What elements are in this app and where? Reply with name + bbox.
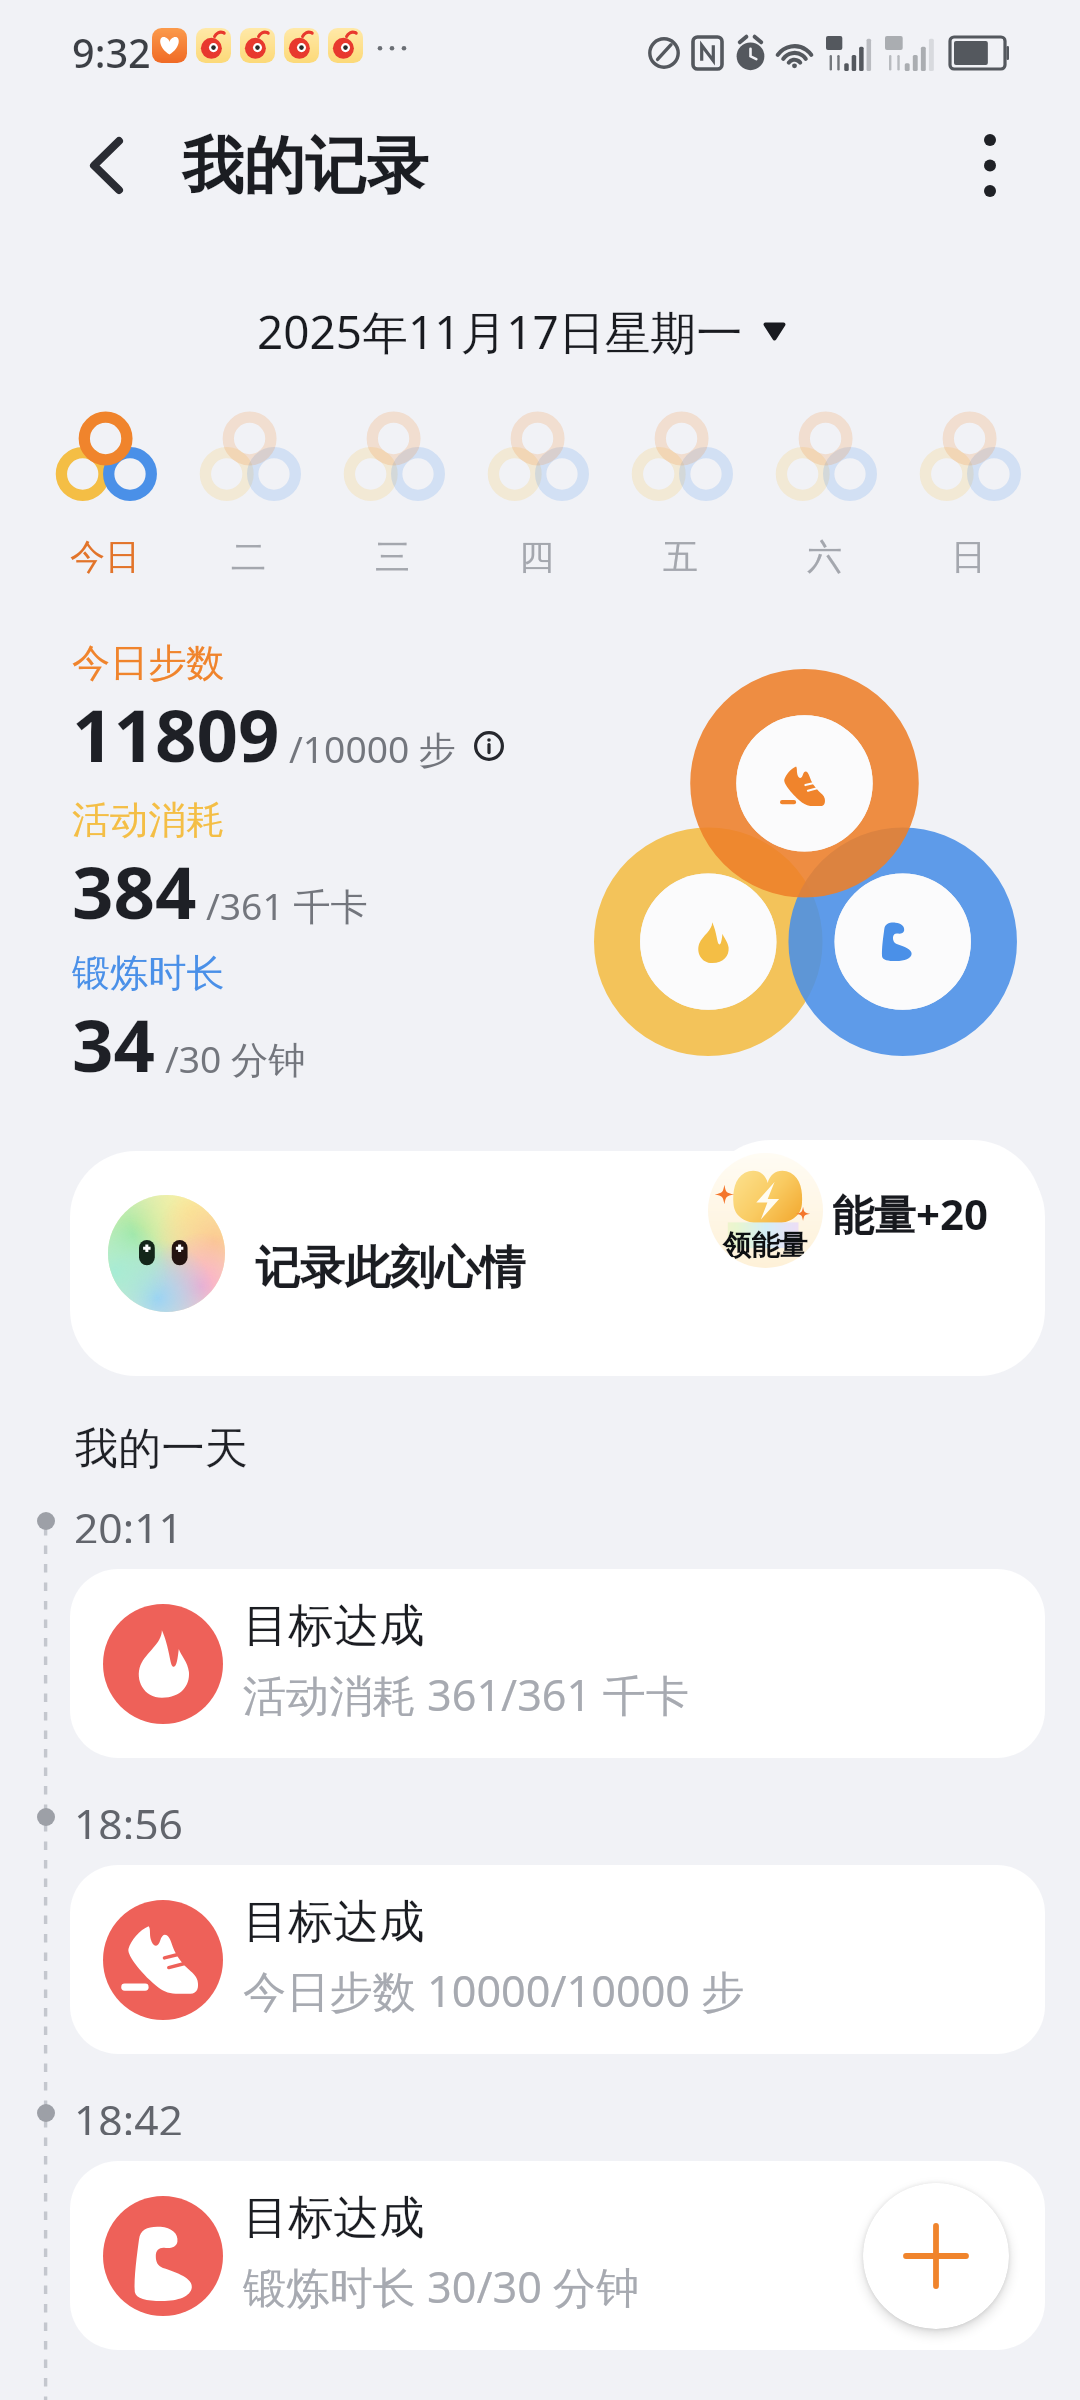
staticText: 五 <box>663 535 699 579</box>
button[interactable]: 三 <box>321 411 465 579</box>
button[interactable]: 六 <box>753 411 897 579</box>
button[interactable]: 四 <box>465 411 609 579</box>
staticText: 384 <box>72 841 197 940</box>
button[interactable]: More options <box>942 117 1038 213</box>
staticText: /361 千卡 <box>206 880 368 931</box>
button[interactable]: 二 <box>177 411 321 579</box>
staticText: 日 <box>951 535 987 579</box>
staticText: 目标达成 <box>243 2189 425 2246</box>
staticText: /10000 步 <box>289 723 457 774</box>
button[interactable]: Add record <box>863 2183 1009 2329</box>
button[interactable]: 今日 <box>33 411 177 579</box>
button[interactable]: 领能量 <box>701 1140 1042 1281</box>
staticText: 记录此刻心情 <box>255 1240 525 1297</box>
staticText: 目标达成 <box>243 1893 425 1950</box>
staticText: 今日 <box>70 535 141 579</box>
button[interactable] <box>70 1151 1045 1376</box>
staticText: 锻炼时长 30/30 分钟 <box>243 2257 640 2316</box>
staticText: 锻炼时长 <box>72 949 225 997</box>
staticText: 18:42 <box>74 2090 183 2135</box>
staticText: 20:11 <box>74 1498 183 1543</box>
staticText: 我的记录 <box>182 128 428 205</box>
button[interactable]: 目标达成 <box>70 2161 1045 2350</box>
staticText: 9:32 <box>72 26 151 80</box>
staticText: 今日步数 <box>72 639 225 687</box>
staticText: 领能量 <box>723 1228 808 1264</box>
staticText: 34 <box>72 994 156 1093</box>
button[interactable]: Back <box>64 123 148 207</box>
staticText: 三 <box>375 535 411 579</box>
staticText: 四 <box>519 535 555 579</box>
staticText: 11809 <box>72 684 280 783</box>
staticText: 我的一天 <box>75 1421 248 1475</box>
staticText: 活动消耗 <box>72 796 225 844</box>
staticText: 18:56 <box>74 1794 183 1839</box>
button[interactable]: 目标达成 <box>70 1865 1045 2054</box>
staticText: 六 <box>807 535 843 579</box>
staticText: 活动消耗 361/361 千卡 <box>243 1665 689 1724</box>
staticText: 目标达成 <box>243 1597 425 1654</box>
staticText: 能量+20 <box>832 1185 989 1242</box>
staticText: 今日步数 10000/10000 步 <box>243 1961 745 2020</box>
staticText: /30 分钟 <box>165 1033 306 1084</box>
staticText: 二 <box>231 535 267 579</box>
button[interactable]: 2025年11月17日星期一 <box>257 300 785 363</box>
button[interactable]: 日 <box>897 411 1041 579</box>
button[interactable]: 五 <box>609 411 753 579</box>
staticText: 2025年11月17日星期一 <box>257 300 743 363</box>
button[interactable]: 目标达成 <box>70 1569 1045 1758</box>
